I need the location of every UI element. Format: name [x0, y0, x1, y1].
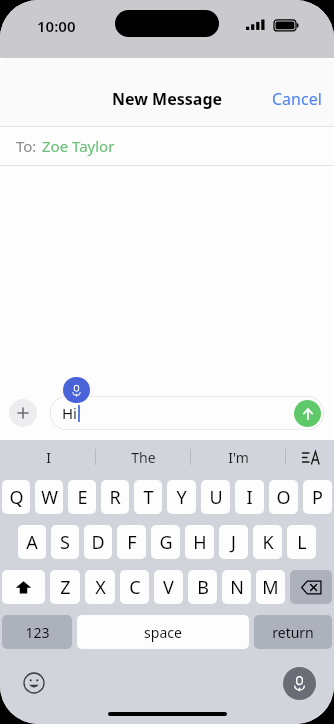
staticText: S	[60, 530, 70, 555]
button[interactable]: H	[185, 525, 214, 559]
staticText: U	[209, 485, 223, 510]
button[interactable]: Add attachment	[9, 399, 37, 427]
staticText: Y	[176, 485, 187, 510]
staticText: P	[312, 485, 323, 510]
button[interactable]: To:	[0, 127, 334, 165]
staticText: X	[95, 575, 106, 600]
button[interactable]: return	[254, 615, 332, 649]
button[interactable]: S	[51, 525, 79, 559]
staticText: Cancel	[272, 88, 322, 110]
staticText: G	[159, 530, 173, 555]
staticText: 10:00	[37, 16, 76, 36]
button[interactable]: I	[235, 480, 264, 514]
staticText: F	[127, 530, 137, 555]
button[interactable]: U	[201, 480, 230, 514]
staticText: D	[91, 530, 105, 555]
button[interactable]: K	[253, 525, 282, 559]
button[interactable]: Dictate	[63, 377, 90, 403]
staticText: K	[262, 530, 274, 555]
staticText: B	[197, 575, 209, 600]
staticText: I	[246, 485, 253, 510]
button[interactable]: I'm	[191, 440, 286, 474]
button[interactable]: 123	[2, 615, 72, 649]
button[interactable]: P	[303, 480, 332, 514]
button[interactable]: Hi	[50, 396, 324, 430]
button[interactable]: space	[77, 615, 249, 649]
staticText: To:	[16, 136, 37, 156]
staticText: return	[272, 623, 314, 642]
button[interactable]: M	[256, 570, 285, 604]
staticText: C	[129, 575, 141, 600]
button[interactable]: C	[120, 570, 149, 604]
staticText: T	[143, 485, 154, 510]
button[interactable]: Y	[167, 480, 196, 514]
staticText: Z	[60, 575, 71, 600]
staticText: The	[131, 448, 156, 467]
staticText: H	[193, 530, 207, 555]
button[interactable]: Text formatting	[286, 440, 334, 474]
button[interactable]: Voice input	[283, 667, 316, 700]
staticText: I'm	[228, 448, 249, 467]
button[interactable]: O	[269, 480, 298, 514]
button[interactable]: T	[134, 480, 162, 514]
button[interactable]: Emoji	[22, 671, 46, 695]
button[interactable]: D	[84, 525, 112, 559]
staticText: New Message	[112, 88, 223, 110]
button[interactable]: G	[151, 525, 180, 559]
button[interactable]: A	[18, 525, 46, 559]
staticText: V	[163, 575, 174, 600]
button[interactable]: L	[287, 525, 316, 559]
staticText: L	[297, 530, 307, 555]
button[interactable]: V	[154, 570, 183, 604]
staticText: Q	[9, 485, 24, 510]
button[interactable]: B	[188, 570, 217, 604]
button[interactable]: X	[85, 570, 115, 604]
button[interactable]: Cancel	[260, 80, 334, 118]
staticText: A	[26, 530, 38, 555]
staticText: W	[41, 485, 58, 510]
staticText: R	[109, 485, 121, 510]
staticText: space	[144, 623, 182, 642]
staticText: O	[276, 485, 291, 510]
button[interactable]: The	[96, 440, 191, 474]
staticText: Hi	[62, 403, 77, 423]
button[interactable]: F	[117, 525, 146, 559]
button[interactable]: Z	[50, 570, 80, 604]
button[interactable]: Q	[2, 480, 30, 514]
staticText: N	[230, 575, 244, 600]
button[interactable]: E	[68, 480, 96, 514]
button[interactable]: W	[35, 480, 63, 514]
staticText: E	[77, 485, 88, 510]
button[interactable]: J	[219, 525, 248, 559]
staticText: M	[262, 575, 279, 600]
button[interactable]: Shift	[2, 570, 45, 604]
staticText: I	[46, 448, 51, 467]
button[interactable]: Send	[294, 400, 321, 427]
staticText: J	[231, 530, 236, 555]
button[interactable]: R	[101, 480, 129, 514]
staticText: 123	[25, 623, 50, 642]
staticText: Zoe Taylor	[42, 136, 115, 156]
button[interactable]: N	[222, 570, 251, 604]
button[interactable]: I	[0, 440, 96, 474]
button[interactable]: Backspace	[290, 570, 332, 604]
